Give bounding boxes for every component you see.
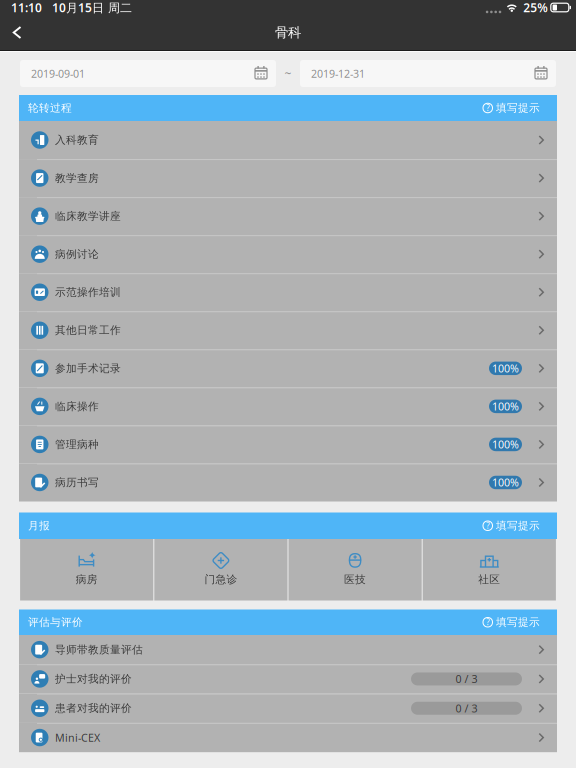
- staticText: 0 / 3: [455, 701, 477, 715]
- staticText: 入科教育: [55, 133, 99, 147]
- staticText: 患者对我的评价: [55, 702, 132, 715]
- button[interactable]: 其他日常工作: [19, 311, 557, 349]
- staticText: 骨科: [275, 24, 301, 41]
- staticText: 100%: [492, 361, 519, 375]
- staticText: 填写提示: [496, 101, 540, 114]
- button[interactable]: 2019-12-31: [300, 60, 556, 87]
- staticText: 管理病种: [55, 438, 99, 451]
- button[interactable]: 临床操作: [19, 387, 557, 425]
- button[interactable]: Mini-CEX: [19, 723, 557, 752]
- staticText: 社区: [478, 573, 500, 586]
- staticText: ?: [486, 103, 489, 113]
- staticText: 25%: [523, 0, 548, 15]
- staticText: 100%: [492, 437, 519, 451]
- button[interactable]: 门急诊: [154, 539, 287, 600]
- staticText: 0 / 3: [455, 672, 477, 686]
- staticText: 评估与评价: [28, 616, 83, 629]
- staticText: 10月15日 周二: [52, 0, 132, 15]
- button[interactable]: 病房: [20, 539, 153, 600]
- button[interactable]: 2019-09-01: [20, 60, 276, 87]
- staticText: 示范操作培训: [55, 286, 121, 299]
- staticText: 月报: [28, 519, 50, 532]
- button[interactable]: ?: [483, 616, 557, 629]
- staticText: 100%: [492, 475, 519, 490]
- button[interactable]: ?: [483, 519, 557, 532]
- staticText: ~: [284, 65, 291, 81]
- button[interactable]: 病例讨论: [19, 235, 557, 273]
- staticText: 2019-09-01: [31, 66, 85, 81]
- button[interactable]: 教学查房: [19, 159, 557, 197]
- staticText: 病房: [76, 573, 98, 586]
- staticText: 2019-12-31: [311, 66, 365, 81]
- button[interactable]: 入科教育: [19, 121, 557, 159]
- button[interactable]: 社区: [423, 539, 556, 600]
- staticText: 医技: [344, 573, 366, 586]
- button[interactable]: 护士对我的评价: [19, 664, 557, 694]
- button[interactable]: 管理病种: [19, 425, 557, 463]
- staticText: 护士对我的评价: [55, 672, 132, 685]
- staticText: 轮转过程: [28, 101, 72, 114]
- staticText: 临床操作: [55, 400, 99, 413]
- staticText: 其他日常工作: [55, 324, 121, 337]
- staticText: Mini-CEX: [55, 730, 100, 745]
- staticText: 填写提示: [496, 616, 540, 629]
- staticText: 填写提示: [496, 519, 540, 532]
- button[interactable]: ?: [483, 101, 557, 114]
- button[interactable]: 参加手术记录: [19, 349, 557, 387]
- button[interactable]: 临床教学讲座: [19, 197, 557, 235]
- staticText: 临床教学讲座: [55, 210, 121, 223]
- staticText: 病历书写: [55, 476, 99, 489]
- button[interactable]: 医技: [288, 539, 422, 600]
- staticText: 门急诊: [204, 573, 237, 586]
- button[interactable]: 导师带教质量评估: [19, 635, 557, 664]
- button[interactable]: 患者对我的评价: [19, 694, 557, 723]
- staticText: 100%: [492, 399, 519, 413]
- staticText: ?: [486, 520, 489, 531]
- staticText: 11:10: [11, 0, 42, 15]
- staticText: 病例讨论: [55, 248, 99, 261]
- button[interactable]: Back: [0, 15, 34, 50]
- staticText: 导师带教质量评估: [55, 643, 143, 656]
- staticText: ?: [486, 617, 489, 627]
- staticText: 参加手术记录: [55, 362, 121, 375]
- button[interactable]: 病历书写: [19, 463, 557, 501]
- staticText: 教学查房: [55, 171, 99, 185]
- button[interactable]: 示范操作培训: [19, 273, 557, 311]
